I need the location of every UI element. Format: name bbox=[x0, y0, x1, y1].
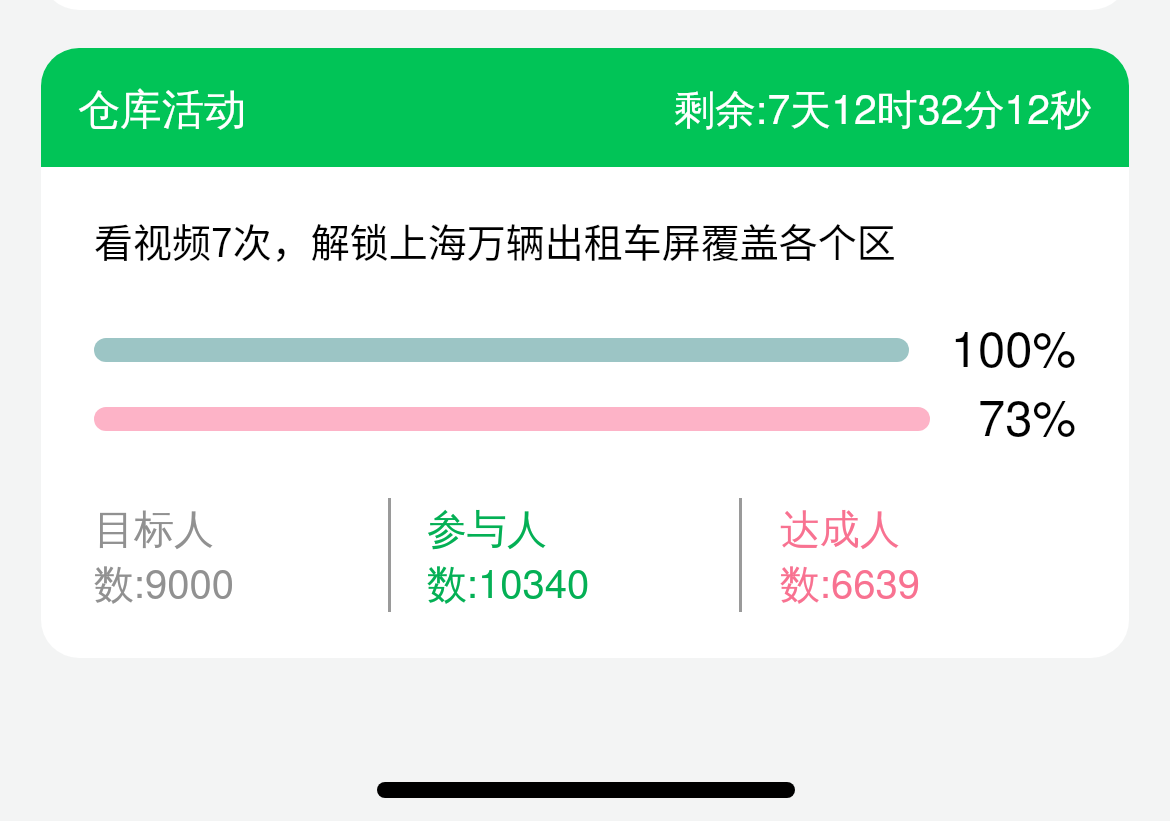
staticText: 仓库活动 bbox=[78, 84, 246, 137]
staticText: 剩余:7天12时32分12秒 bbox=[674, 77, 1091, 136]
staticText: 看视频7次，解锁上海万辆出租车屏覆盖各个区 bbox=[94, 212, 896, 268]
button[interactable]: 仓库活动 bbox=[41, 48, 1129, 658]
other: Home bbox=[377, 782, 795, 798]
staticText: 100% bbox=[941, 311, 1076, 381]
staticText: 参与人数:10340 bbox=[427, 504, 647, 610]
staticText: 目标人数:9000 bbox=[94, 504, 314, 610]
staticText: 达成人数:6639 bbox=[780, 504, 1000, 610]
staticText: 73% bbox=[941, 380, 1076, 450]
